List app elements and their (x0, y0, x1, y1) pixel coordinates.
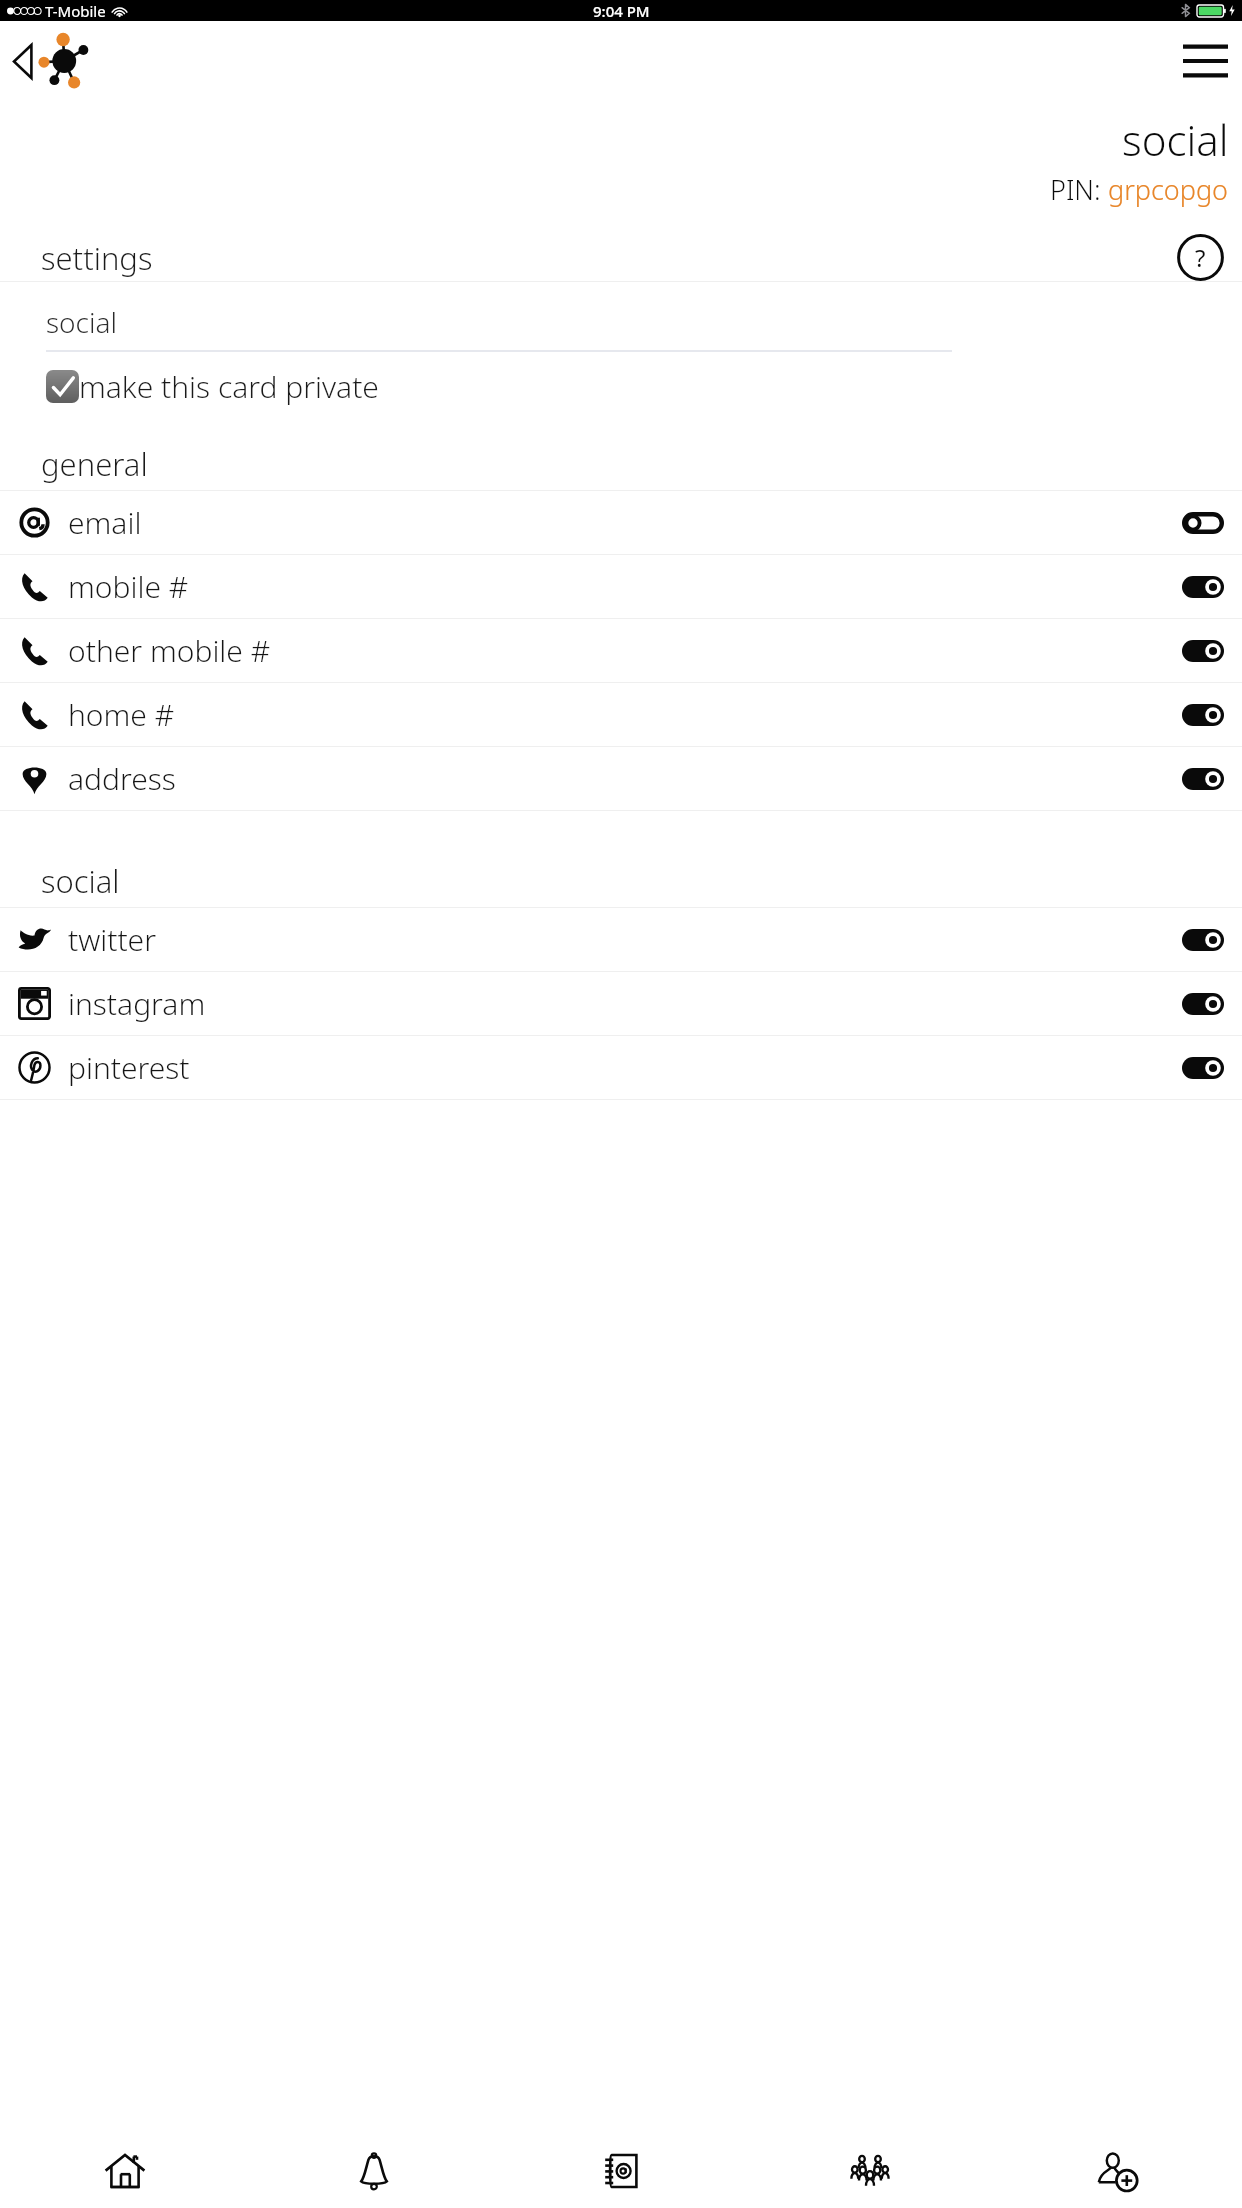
button[interactable]: instagram (0, 972, 1242, 1035)
staticText: pinterest (68, 1047, 1182, 1088)
button[interactable]: Toggle address (1182, 764, 1224, 794)
staticText: general (41, 443, 148, 485)
button[interactable]: home # (0, 683, 1242, 746)
staticText: settings (41, 237, 153, 279)
staticText: PIN: (1050, 171, 1108, 208)
button[interactable]: Toggle home # (1182, 700, 1224, 730)
button[interactable]: make this card private (46, 366, 1242, 407)
staticText: home # (68, 694, 1182, 735)
staticText: 9:04 PM (593, 1, 650, 21)
button[interactable]: other mobile # (0, 619, 1242, 682)
staticText: ? (1195, 241, 1206, 274)
button[interactable]: mobile # (0, 555, 1242, 618)
staticText: address (68, 758, 1182, 799)
staticText: instagram (68, 983, 1182, 1024)
button[interactable]: Toggle email (1182, 508, 1224, 538)
button[interactable]: Toggle mobile # (1182, 572, 1224, 602)
staticText: twitter (68, 919, 1182, 960)
button[interactable]: Menu (1179, 35, 1231, 87)
staticText: T-Mobile (45, 1, 106, 21)
button[interactable]: pinterest (0, 1036, 1242, 1099)
button[interactable]: Add contact (994, 2134, 1242, 2208)
staticText: grpcopgo (1108, 171, 1229, 208)
button[interactable]: Contacts (498, 2134, 746, 2208)
staticText: make this card private (79, 366, 379, 407)
button[interactable]: email (0, 491, 1242, 554)
button[interactable]: Back (13, 32, 95, 90)
staticText: social (46, 303, 117, 341)
staticText: social (41, 860, 120, 902)
button[interactable]: twitter (0, 908, 1242, 971)
button[interactable]: address (0, 747, 1242, 810)
button[interactable]: Toggle other mobile # (1182, 636, 1224, 666)
button[interactable]: Notifications (249, 2134, 498, 2208)
button[interactable]: Help (1176, 234, 1224, 281)
button[interactable]: Toggle instagram (1182, 989, 1224, 1019)
staticText: other mobile # (68, 630, 1182, 671)
staticText: email (68, 502, 1182, 543)
button[interactable]: Home (0, 2134, 249, 2208)
button[interactable]: Toggle twitter (1182, 925, 1224, 955)
button[interactable]: Groups (746, 2134, 994, 2208)
staticText: mobile # (68, 566, 1182, 607)
button[interactable]: Toggle pinterest (1182, 1053, 1224, 1083)
staticText: social (1122, 111, 1229, 168)
